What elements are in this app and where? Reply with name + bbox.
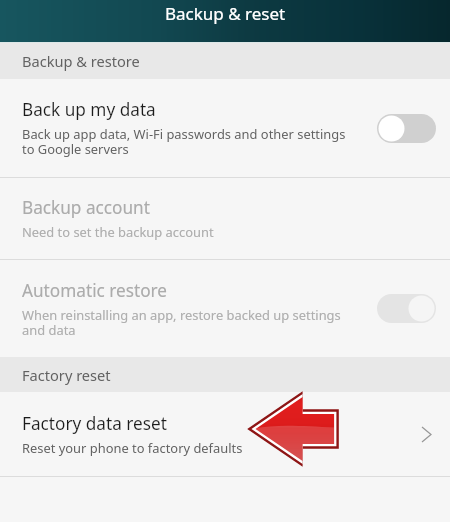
button[interactable]: Toggle xyxy=(377,294,436,323)
staticText: Back up my data xyxy=(22,98,156,121)
button[interactable]: Backup account xyxy=(0,178,450,259)
staticText: Reset your phone to factory defaults xyxy=(22,439,243,457)
button[interactable]: Back up my data xyxy=(0,79,450,177)
button[interactable]: Automatic restore xyxy=(0,260,450,357)
staticText: Back up app data, Wi-Fi passwords and ot… xyxy=(22,125,358,158)
staticText: Automatic restore xyxy=(22,279,168,302)
button[interactable]: Factory data reset xyxy=(0,392,450,476)
button[interactable]: Toggle xyxy=(377,114,436,143)
staticText: Backup & reset xyxy=(165,2,286,25)
staticText: When reinstalling an app, restore backed… xyxy=(22,306,358,339)
staticText: Backup account xyxy=(22,196,150,219)
staticText: Need to set the backup account xyxy=(22,223,214,241)
staticText: Factory reset xyxy=(22,365,111,385)
staticText: Backup & restore xyxy=(22,51,140,71)
staticText: Factory data reset xyxy=(22,412,167,435)
other: Open xyxy=(413,421,439,447)
